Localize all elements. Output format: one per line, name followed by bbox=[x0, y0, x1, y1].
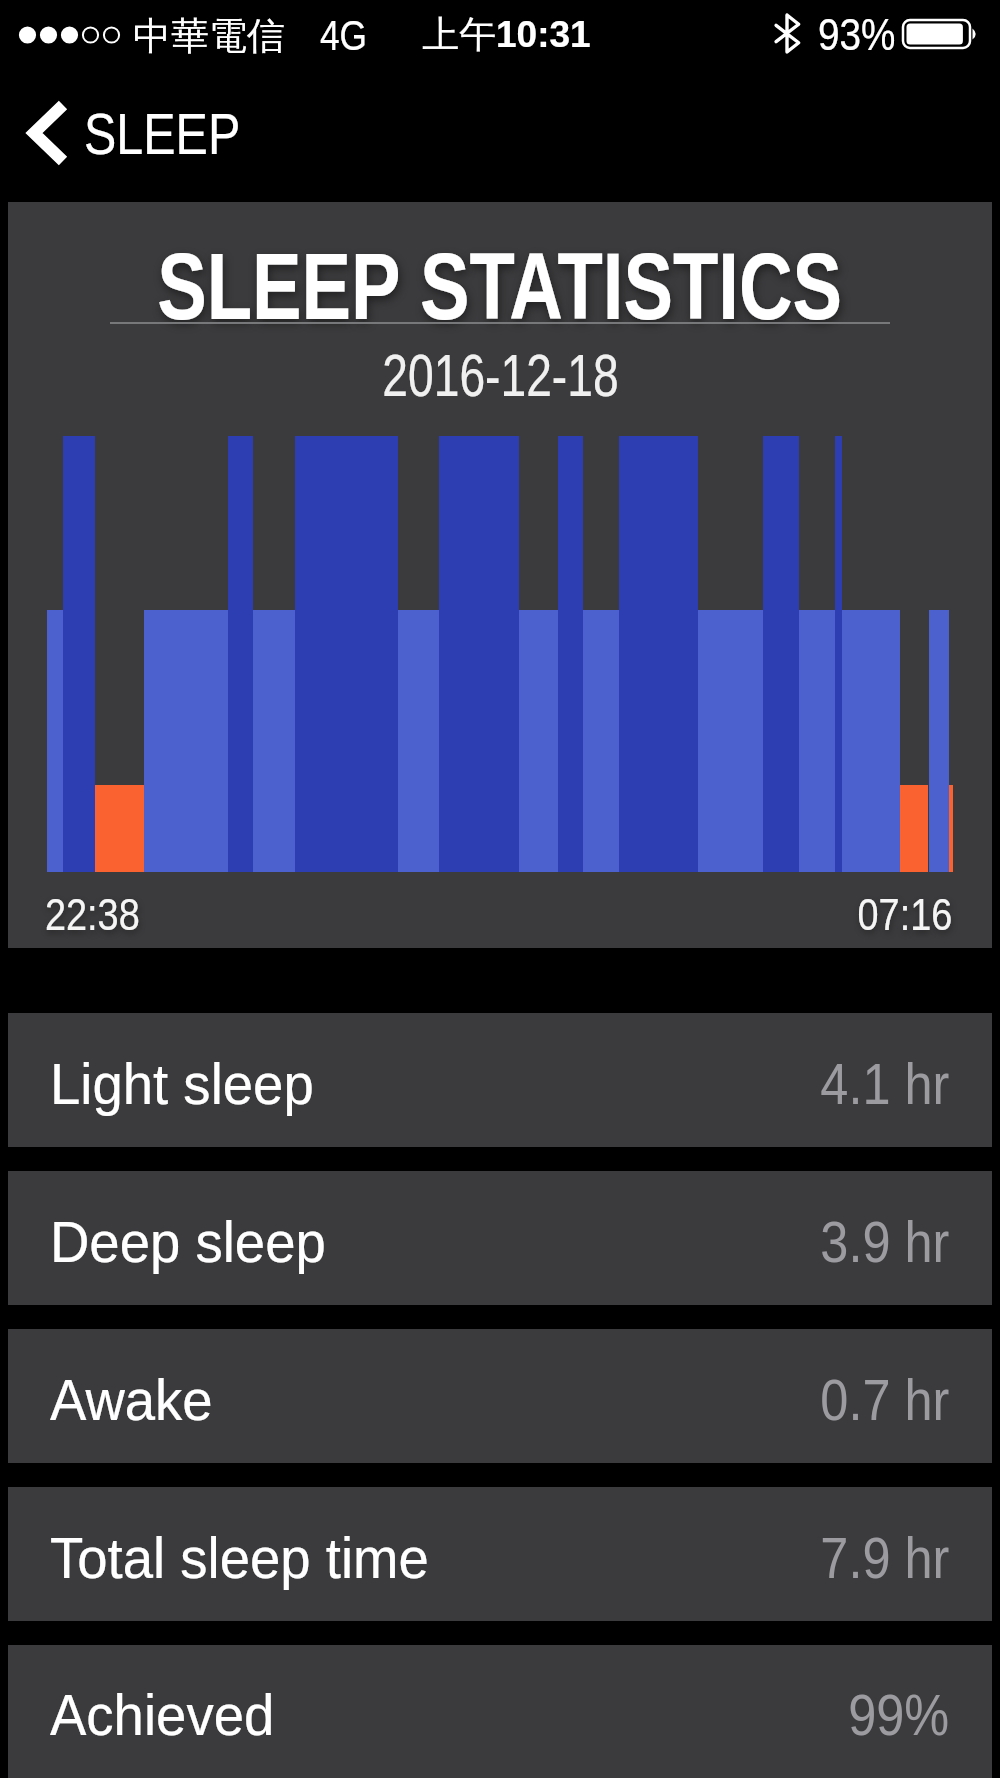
staticText: Light sleep bbox=[50, 1051, 314, 1116]
staticText: 上午10:31 bbox=[422, 11, 591, 58]
staticText: 4.1 hr bbox=[820, 1051, 950, 1116]
staticText: 93% bbox=[818, 9, 896, 59]
staticText: 中華電信 bbox=[133, 12, 285, 60]
staticText: SLEEP STATISTICS bbox=[157, 234, 843, 339]
staticText: Total sleep time bbox=[50, 1525, 429, 1590]
staticText: 3.9 hr bbox=[820, 1209, 950, 1274]
staticText: 22:38 bbox=[45, 890, 140, 939]
staticText: SLEEP bbox=[84, 102, 240, 166]
staticText: Achieved bbox=[50, 1682, 275, 1747]
staticText: 99% bbox=[848, 1682, 950, 1747]
button[interactable]: Achieved bbox=[8, 1645, 992, 1778]
staticText: 7.9 hr bbox=[820, 1525, 950, 1590]
button[interactable]: Awake bbox=[8, 1329, 992, 1463]
staticText: 2016-12-18 bbox=[382, 342, 619, 409]
staticText: 0.7 hr bbox=[820, 1367, 950, 1432]
button[interactable]: SLEEP bbox=[0, 70, 222, 202]
button[interactable]: Light sleep bbox=[8, 1013, 992, 1147]
staticText: 07:16 bbox=[857, 890, 953, 939]
staticText: 4G bbox=[320, 12, 368, 59]
staticText: Deep sleep bbox=[50, 1209, 326, 1274]
button[interactable]: Total sleep time bbox=[8, 1487, 992, 1621]
staticText: Awake bbox=[50, 1367, 214, 1432]
button[interactable]: Deep sleep bbox=[8, 1171, 992, 1305]
